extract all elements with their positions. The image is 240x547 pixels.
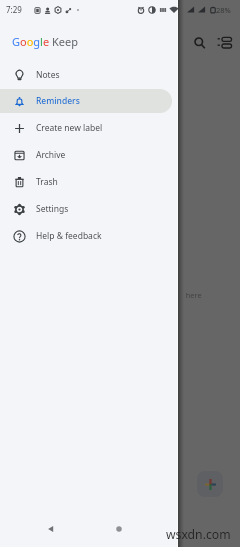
- staticText: Google Keep: [12, 34, 78, 49]
- staticText: Trash: [36, 176, 58, 188]
- button[interactable]: Trash: [0, 170, 172, 194]
- button[interactable]: Reminders: [0, 89, 172, 113]
- button[interactable]: Archive: [0, 143, 172, 167]
- staticText: 7:29: [6, 4, 22, 15]
- staticText: Help & feedback: [36, 230, 102, 242]
- button[interactable]: Toggle list view: [216, 34, 232, 50]
- button[interactable]: Create new label: [0, 116, 172, 140]
- staticText: Notes: [36, 69, 60, 81]
- staticText: 28%: [216, 5, 231, 15]
- staticText: Notes you add appear here: [107, 290, 202, 300]
- button[interactable]: Notes: [0, 63, 172, 87]
- button[interactable]: Create new note: [197, 471, 223, 497]
- button[interactable]: Settings: [0, 197, 172, 221]
- button[interactable]: Search: [191, 34, 207, 50]
- staticText: Reminders: [36, 95, 80, 107]
- staticText: Archive: [36, 149, 66, 161]
- staticText: wsxdn.com: [166, 526, 231, 543]
- staticText: Settings: [36, 203, 69, 215]
- staticText: Create new label: [36, 122, 103, 134]
- button[interactable]: Back: [45, 523, 57, 535]
- button[interactable]: Help & feedback: [0, 224, 172, 248]
- button[interactable]: Home: [113, 523, 125, 535]
